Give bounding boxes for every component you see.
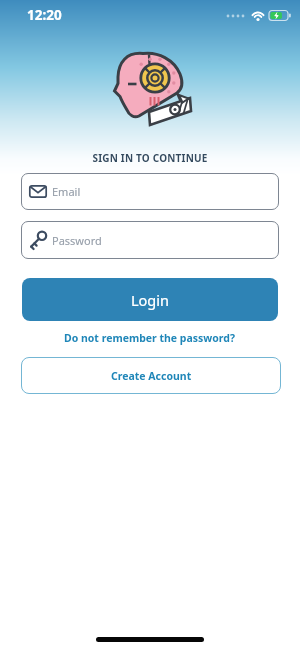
staticText: Login bbox=[131, 290, 169, 310]
button[interactable]: Email bbox=[21, 173, 279, 210]
button[interactable]: Login bbox=[22, 278, 278, 321]
staticText: 12:20 bbox=[27, 6, 62, 24]
button[interactable]: Password bbox=[21, 221, 279, 259]
staticText: SIGN IN TO CONTINUE bbox=[0, 151, 300, 165]
button[interactable]: Create Account bbox=[21, 357, 281, 394]
staticText: Email bbox=[52, 184, 81, 199]
button[interactable]: Do not remember the password? bbox=[0, 329, 300, 347]
staticText: Do not remember the password? bbox=[64, 331, 236, 345]
staticText: Password bbox=[52, 233, 102, 248]
staticText: Create Account bbox=[111, 369, 192, 383]
